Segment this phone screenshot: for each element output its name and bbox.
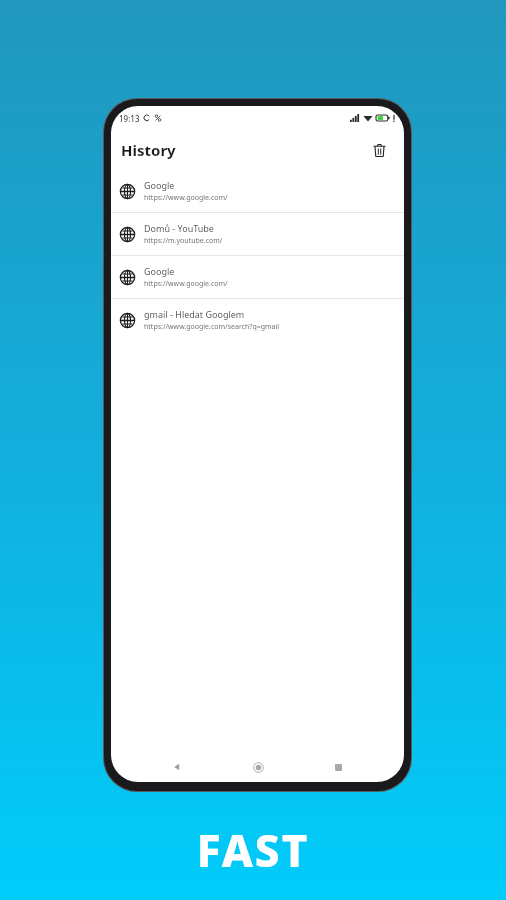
staticText: https://www.google.com/search?q=gmail — [144, 322, 280, 332]
staticText: Google — [144, 179, 175, 191]
button[interactable]: Domů - YouTube — [111, 213, 404, 255]
staticText: gmail - Hledat Googlem — [144, 308, 245, 320]
button[interactable]: Back — [162, 752, 192, 782]
staticText: History — [121, 140, 176, 160]
staticText: Domů - YouTube — [144, 222, 214, 234]
button[interactable]: gmail - Hledat Googlem — [111, 299, 404, 341]
button[interactable]: Clear history — [364, 135, 394, 165]
button[interactable]: Recent apps — [323, 752, 353, 782]
button[interactable]: Google — [111, 256, 404, 298]
staticText: https://www.google.com/ — [144, 279, 228, 289]
staticText: https://m.youtube.com/ — [144, 236, 223, 246]
button[interactable]: Google — [111, 170, 404, 212]
staticText: FAST — [0, 820, 506, 880]
button[interactable]: Home — [243, 752, 273, 782]
staticText: Google — [144, 265, 175, 277]
staticText: 19:13 — [119, 113, 140, 124]
staticText: https://www.google.com/ — [144, 193, 228, 203]
